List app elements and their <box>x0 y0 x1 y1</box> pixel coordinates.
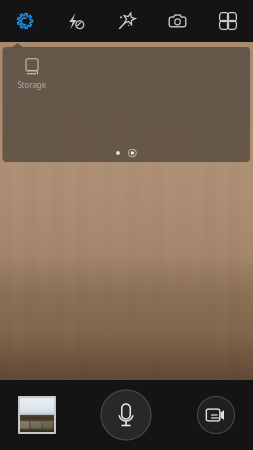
button[interactable]: Voice memo <box>98 387 154 443</box>
button[interactable]: Flash off <box>50 0 101 42</box>
staticText: Storage <box>17 80 46 90</box>
button[interactable]: Effects <box>101 0 152 42</box>
button[interactable]: Record video <box>194 393 238 437</box>
button[interactable]: Open camera roll <box>15 393 59 437</box>
button[interactable]: Storage <box>5 53 59 95</box>
button[interactable]: Settings <box>0 0 50 42</box>
button[interactable]: Switch camera <box>152 0 203 42</box>
button[interactable]: Capture modes <box>203 0 253 42</box>
